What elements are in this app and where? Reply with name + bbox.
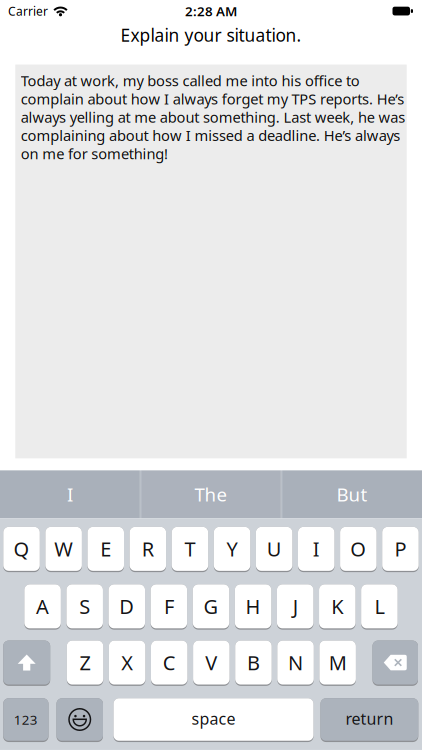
staticText: K — [331, 593, 343, 620]
button[interactable]: D — [108, 584, 145, 630]
staticText: N — [288, 649, 303, 676]
staticText: E — [100, 536, 111, 562]
staticText: Q — [14, 536, 30, 562]
staticText: U — [267, 536, 282, 562]
button[interactable]: I — [0, 470, 140, 518]
button[interactable]: U — [256, 527, 292, 572]
staticText: on me for something! — [21, 144, 168, 163]
staticText: 2:28 AM — [185, 2, 237, 20]
staticText: L — [374, 593, 384, 620]
staticText: X — [121, 649, 133, 676]
button[interactable]: Numbers — [3, 698, 48, 742]
button[interactable]: B — [235, 640, 272, 686]
button[interactable]: C — [151, 640, 187, 686]
button[interactable]: K — [319, 584, 355, 630]
button[interactable]: A — [24, 584, 61, 630]
button[interactable]: space — [113, 698, 313, 742]
button[interactable]: The — [141, 470, 281, 518]
button[interactable]: F — [151, 584, 187, 630]
button[interactable]: N — [277, 640, 314, 686]
staticText: J — [293, 593, 298, 620]
staticText: O — [350, 536, 366, 562]
button[interactable]: Delete — [372, 640, 418, 686]
button[interactable]: S — [66, 584, 103, 630]
button[interactable]: P — [382, 527, 419, 572]
staticText: I — [67, 482, 73, 507]
staticText: V — [205, 649, 217, 676]
staticText: A — [36, 593, 49, 620]
button[interactable]: X — [109, 640, 145, 686]
staticText: Y — [227, 536, 238, 562]
button[interactable]: G — [193, 584, 229, 630]
staticText: complain about how I always forget my TP… — [21, 89, 404, 109]
staticText: return — [345, 708, 393, 729]
staticText: W — [54, 536, 73, 562]
staticText: Today at work, my boss called me into hi… — [21, 71, 360, 90]
staticText: Explain your situation. — [120, 23, 301, 46]
button[interactable]: J — [277, 584, 313, 630]
staticText: G — [203, 593, 218, 620]
staticText: I — [313, 536, 320, 562]
staticText: always yelling at me about something. La… — [21, 107, 405, 127]
button[interactable]: V — [193, 640, 230, 686]
button[interactable]: E — [87, 527, 124, 572]
button[interactable]: I — [298, 527, 334, 572]
button[interactable]: Shift — [3, 640, 50, 686]
staticText: R — [142, 536, 154, 562]
staticText: D — [119, 593, 134, 620]
button[interactable]: O — [340, 527, 377, 572]
button[interactable]: T — [172, 527, 208, 572]
button[interactable]: But — [282, 470, 422, 518]
staticText: B — [247, 649, 260, 676]
button[interactable]: W — [45, 527, 82, 572]
staticText: F — [164, 593, 174, 620]
button[interactable]: H — [235, 584, 271, 630]
staticText: complaining about how I missed a deadlin… — [21, 125, 400, 145]
button[interactable]: Q — [3, 527, 40, 572]
staticText: S — [79, 593, 90, 620]
staticText: The — [194, 482, 227, 507]
button[interactable]: return — [320, 698, 418, 742]
staticText: But — [336, 482, 367, 507]
staticText: H — [246, 593, 261, 620]
staticText: space — [191, 708, 235, 729]
staticText: M — [329, 649, 347, 676]
staticText: C — [163, 649, 176, 676]
staticText: Z — [79, 649, 90, 676]
staticText: 123 — [14, 711, 38, 728]
button[interactable]: Z — [67, 640, 103, 686]
staticText: P — [394, 536, 406, 562]
button[interactable]: L — [361, 584, 398, 630]
staticText: Carrier — [8, 3, 48, 19]
button[interactable]: R — [130, 527, 166, 572]
staticText: T — [184, 536, 195, 562]
button[interactable]: Y — [214, 527, 250, 572]
button[interactable]: M — [319, 640, 356, 686]
button[interactable]: Emoji — [56, 698, 103, 742]
